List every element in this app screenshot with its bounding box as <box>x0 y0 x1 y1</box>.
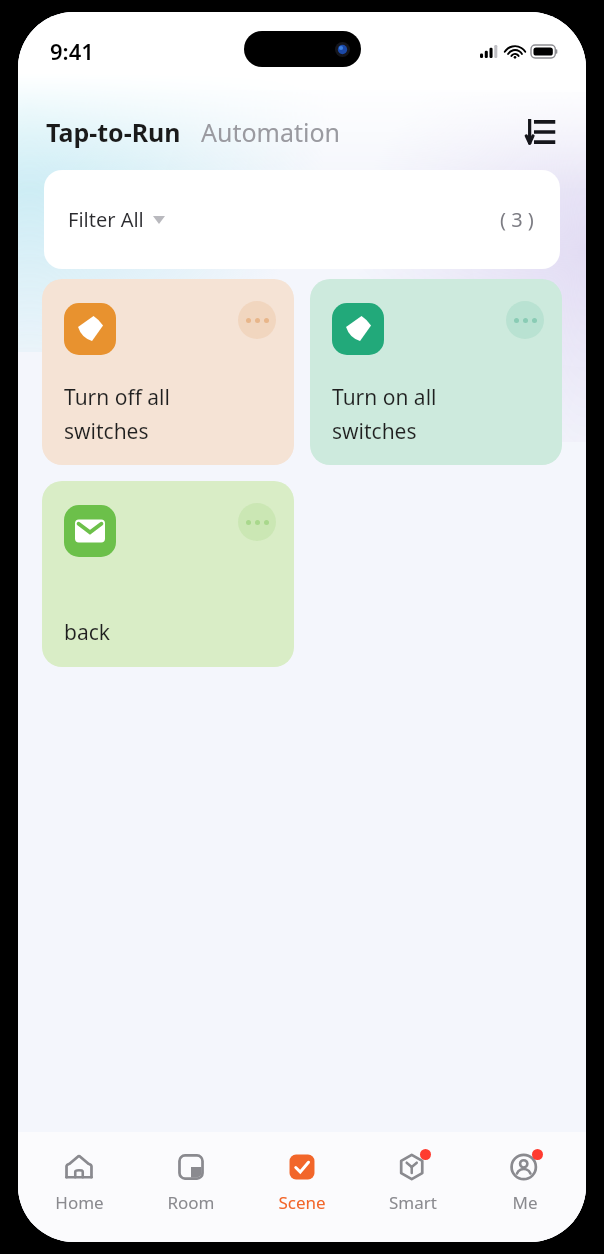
button[interactable]: Scene <box>252 1144 352 1218</box>
staticText: Room <box>167 1191 215 1214</box>
button[interactable]: Sort <box>520 112 560 152</box>
button[interactable]: More options <box>238 503 276 541</box>
staticText: Me <box>512 1191 538 1214</box>
staticText: Tap-to-Run <box>46 115 181 149</box>
button[interactable]: Filter All <box>44 170 560 269</box>
staticText: back <box>64 618 110 647</box>
button[interactable]: Me <box>475 1144 575 1218</box>
button[interactable]: More options <box>238 301 276 339</box>
staticText: Home <box>55 1191 104 1214</box>
staticText: 9:41 <box>50 36 94 66</box>
button[interactable]: Smart <box>363 1144 463 1218</box>
button[interactable]: More options <box>42 481 294 667</box>
staticText: Automation <box>201 115 341 149</box>
staticText: Turn off all switches <box>64 383 170 445</box>
button[interactable]: Room <box>141 1144 241 1218</box>
button[interactable]: Home <box>29 1144 129 1218</box>
button[interactable]: Automation <box>201 115 341 149</box>
staticText: Turn on all switches <box>332 383 437 445</box>
button[interactable]: More options <box>42 279 294 465</box>
staticText: Filter All <box>68 206 144 233</box>
staticText: Smart <box>389 1191 437 1214</box>
button[interactable]: More options <box>310 279 562 465</box>
button[interactable]: More options <box>506 301 544 339</box>
staticText: ( 3 ) <box>500 206 534 233</box>
staticText: Scene <box>278 1191 326 1214</box>
button[interactable]: Tap-to-Run <box>46 115 181 149</box>
